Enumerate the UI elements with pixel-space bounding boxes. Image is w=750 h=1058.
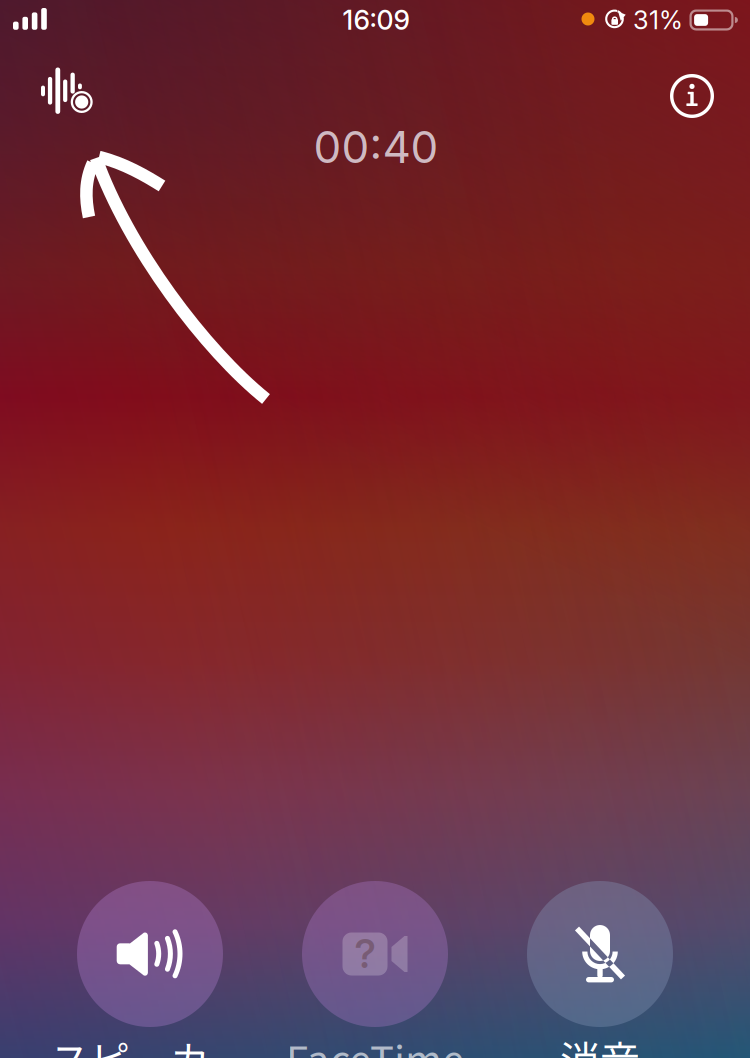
button[interactable]: Voice Isolation [23, 51, 111, 130]
button[interactable]: ? [262, 878, 487, 1058]
button[interactable]: Call Info [653, 57, 731, 135]
staticText: ? [354, 931, 375, 977]
button[interactable]: 消音 [487, 878, 712, 1058]
staticText: 00:40 [313, 120, 438, 174]
staticText: 消音 [560, 1029, 640, 1058]
staticText: 16:09 [342, 4, 409, 36]
button[interactable]: スピーカー [37, 878, 262, 1058]
staticText: FaceTime [286, 1029, 464, 1058]
staticText: 31% [633, 5, 683, 35]
staticText: スピーカー [50, 1029, 250, 1058]
